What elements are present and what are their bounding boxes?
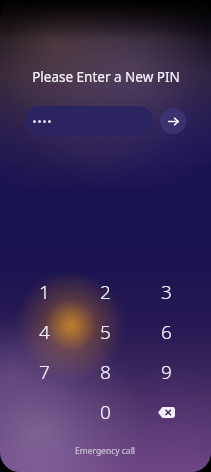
staticText: 0: [100, 399, 111, 425]
staticText: Please Enter a New PIN: [32, 68, 180, 86]
staticText: 6: [161, 319, 172, 345]
button[interactable]: 7: [14, 352, 75, 392]
button[interactable]: 6: [136, 312, 197, 352]
staticText: 9: [161, 359, 172, 385]
staticText: 8: [100, 359, 111, 385]
button[interactable]: [25, 106, 153, 136]
button[interactable]: 9: [136, 352, 197, 392]
button[interactable]: Emergency call: [65, 442, 146, 460]
button[interactable]: 8: [75, 352, 136, 392]
staticText: 4: [39, 319, 50, 345]
staticText: 2: [100, 279, 111, 305]
button[interactable]: Backspace: [136, 392, 197, 432]
button[interactable]: Submit PIN: [160, 108, 186, 134]
button[interactable]: 5: [75, 312, 136, 352]
staticText: Emergency call: [75, 445, 136, 457]
button[interactable]: 2: [75, 272, 136, 312]
button[interactable]: 4: [14, 312, 75, 352]
staticText: 5: [100, 319, 111, 345]
button[interactable]: 0: [75, 392, 136, 432]
staticText: 3: [161, 279, 172, 305]
staticText: 1: [39, 279, 50, 305]
button[interactable]: 3: [136, 272, 197, 312]
button[interactable]: 1: [14, 272, 75, 312]
staticText: 7: [39, 359, 50, 385]
